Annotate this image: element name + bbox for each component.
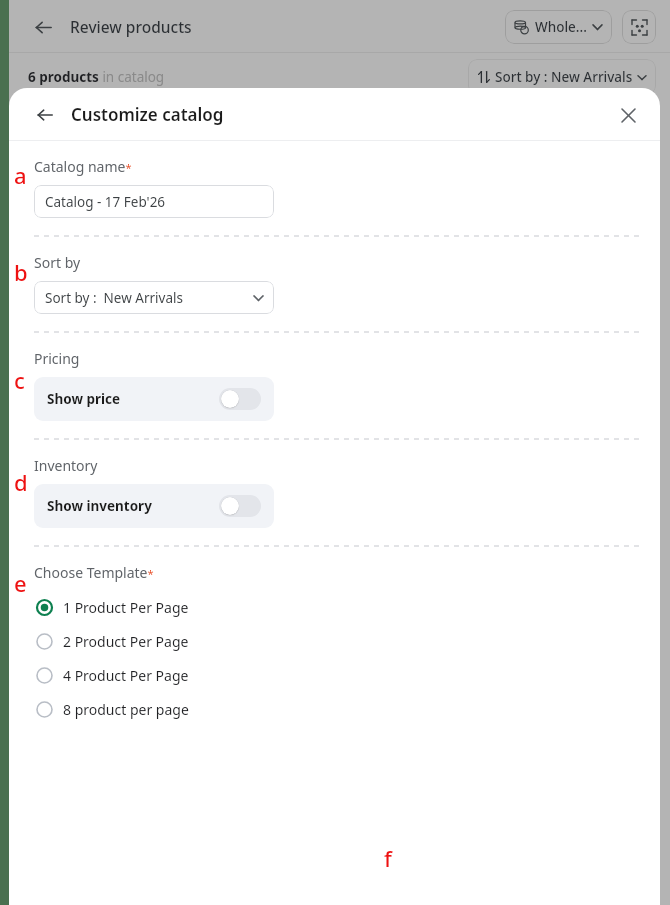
button[interactable]: Scan xyxy=(622,10,656,44)
staticText: e xyxy=(14,568,27,598)
staticText: Pricing xyxy=(34,349,80,368)
staticText: Show price xyxy=(47,390,121,408)
staticText: f xyxy=(384,843,392,873)
staticText: Customize catalog xyxy=(71,103,224,126)
staticText: 6 products in catalog xyxy=(28,68,165,86)
staticText: Sort by : New Arrivals xyxy=(45,289,183,307)
button[interactable]: 8 product per page xyxy=(9,692,660,726)
button[interactable]: Show price xyxy=(34,377,274,421)
staticText: 1 Product Per Page xyxy=(63,598,189,617)
staticText: a xyxy=(14,160,27,190)
staticText: 8 product per page xyxy=(63,700,189,719)
staticText: 2 Product Per Page xyxy=(63,632,189,651)
button[interactable]: Back xyxy=(31,101,59,129)
staticText: Whole... xyxy=(535,18,587,36)
button[interactable]: 1 Product Per Page xyxy=(9,590,660,624)
staticText: Catalog name* xyxy=(34,157,132,176)
button[interactable]: 2 Product Per Page xyxy=(9,624,660,658)
button[interactable]: Sort by : New Arrivals xyxy=(468,59,656,95)
staticText: Inventory xyxy=(34,456,98,475)
button[interactable]: Catalog - 17 Feb'26 xyxy=(34,185,274,218)
staticText: d xyxy=(14,467,28,497)
staticText: Show inventory xyxy=(47,497,152,515)
staticText: Choose Template* xyxy=(34,563,154,582)
button[interactable]: Whole... xyxy=(505,10,612,44)
button[interactable]: 4 Product Per Page xyxy=(9,658,660,692)
staticText: c xyxy=(14,365,25,395)
button[interactable]: Sort by : New Arrivals xyxy=(34,281,274,314)
staticText: Catalog - 17 Feb'26 xyxy=(45,193,166,211)
button[interactable]: Show inventory xyxy=(34,484,274,528)
staticText: Sort by xyxy=(34,253,81,272)
staticText: Review products xyxy=(70,16,192,37)
button[interactable]: Back xyxy=(28,12,58,42)
staticText: b xyxy=(14,257,28,287)
staticText: 4 Product Per Page xyxy=(63,666,189,685)
staticText: Sort by : New Arrivals xyxy=(495,68,633,86)
button[interactable]: Close xyxy=(612,99,644,131)
